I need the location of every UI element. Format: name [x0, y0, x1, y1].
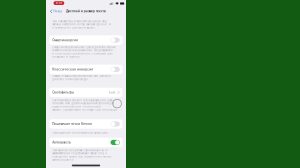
button[interactable]: Классическая инверсия — [49, 65, 122, 74]
button[interactable]: Смарт-инверсия — [49, 35, 122, 45]
staticText: Смарт-инверсия меняет цвета дисплея, кро… — [52, 46, 116, 49]
button[interactable]: Светофильтры — [49, 88, 122, 97]
button[interactable]: Назад — [50, 8, 62, 14]
staticText: 9:41 — [56, 2, 62, 5]
staticText: Светофильтры — [52, 91, 74, 94]
staticText: Понижение точки белого — [52, 122, 92, 126]
staticText: Автояркость — [52, 141, 71, 144]
staticText: Автояркость продлевает время работы от — [52, 149, 108, 152]
staticText: исключением изображений, медиафайлов — [52, 49, 112, 52]
staticText: на экране и в меню — [52, 55, 79, 58]
staticText: Дисплей и размер текста — [66, 10, 106, 13]
staticText: влиять на работу — [52, 158, 73, 161]
staticText: и комфортно для глаз на экране. — [52, 26, 96, 29]
staticText: экрана. Настройте их так, как Вам удобно… — [52, 23, 111, 26]
staticText: дисплее полностью везде — [52, 78, 88, 81]
staticText: экране. Применяйте их только при необход… — [52, 108, 117, 111]
button[interactable]: Автояркость — [49, 138, 122, 147]
staticText: Уменьшение интенсивности ярких цвет — [52, 131, 108, 134]
staticText: Назад — [53, 10, 62, 13]
staticText: тонизме или других нарушениях зрения для — [52, 102, 113, 105]
staticText: Выкл. — [109, 91, 117, 94]
staticText: освещение вокруг Вас. Выключение может — [52, 155, 112, 158]
staticText: и некоторых приложений с тёмными цвет — [52, 52, 113, 55]
staticText: Смарт-инверсия — [52, 38, 78, 42]
staticText: Классическая инверсия — [52, 68, 93, 71]
staticText: Эти параметры изменяют внешний вид — [52, 20, 107, 23]
staticText: Классическая инверсия меняет все цвета н… — [52, 74, 110, 77]
staticText: аккумулятора и подстраивает экран под э — [52, 152, 106, 155]
staticText: различения цветов и чтения текста — [52, 105, 100, 108]
button[interactable]: Понижение точки белого — [49, 119, 122, 129]
staticText: Светофильтры можно использовать при даль — [52, 99, 112, 102]
